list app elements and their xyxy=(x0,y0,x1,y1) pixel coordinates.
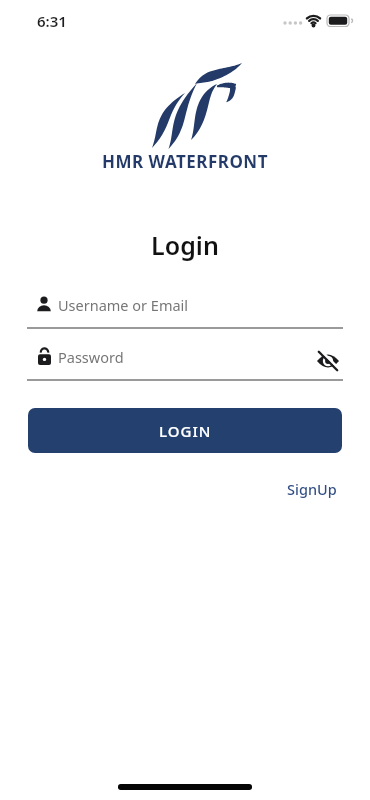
button[interactable] xyxy=(316,349,340,373)
staticText: Username or Email xyxy=(58,295,189,315)
staticText: Password xyxy=(58,347,124,367)
button[interactable]: LOGIN xyxy=(28,408,342,453)
staticText: LOGIN xyxy=(159,421,212,441)
button[interactable]: SignUp xyxy=(281,476,343,502)
staticText: HMR WATERFRONT xyxy=(0,150,370,173)
button[interactable]: Password xyxy=(27,342,343,380)
staticText: SignUp xyxy=(287,479,337,499)
button[interactable]: Username or Email xyxy=(27,290,343,328)
staticText: Login xyxy=(0,228,370,262)
staticText: 6:31 xyxy=(37,11,67,31)
